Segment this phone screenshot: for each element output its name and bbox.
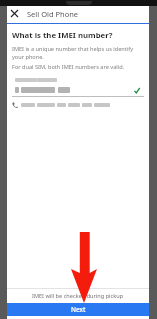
button[interactable] [12,78,144,97]
button[interactable]: Close [7,6,22,21]
staticText: For dual SIM, both IMEI numbers are vali… [12,63,125,71]
button[interactable]: Call [12,102,144,108]
staticText: Next [71,305,86,314]
button[interactable]: Next [7,303,149,316]
staticText: IMEI is a unique number that helps us id… [12,45,144,61]
staticText: What is the IMEI number? [12,30,113,41]
other: Call [12,102,18,108]
staticText: IMEI will be checked during pickup [32,292,124,300]
staticText: Sell Old Phone [27,9,79,19]
